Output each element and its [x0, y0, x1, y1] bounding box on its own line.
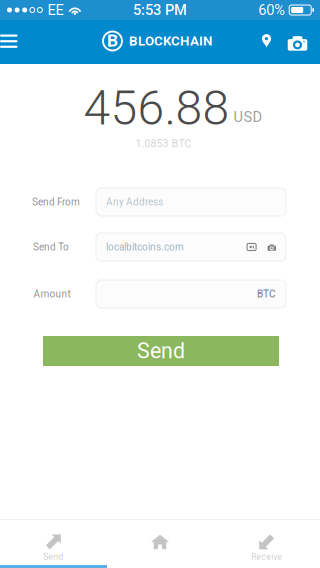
- staticText: Any Address: [106, 196, 163, 208]
- staticText: 456.88: [83, 80, 229, 136]
- button[interactable]: Scan QR code: [283, 23, 311, 61]
- staticText: Send: [137, 338, 185, 363]
- button[interactable]: Send: [0, 518, 107, 567]
- staticText: Send From: [32, 196, 80, 208]
- staticText: BTC: [257, 288, 276, 300]
- staticText: localbitcoins.com: [106, 241, 184, 253]
- staticText: 5:53 PM: [133, 1, 187, 19]
- staticText: Amount: [33, 288, 70, 300]
- staticText: BLOCKCHAIN: [129, 33, 212, 49]
- staticText: USD: [233, 108, 262, 126]
- staticText: B: [107, 30, 118, 51]
- button[interactable]: Nearby places: [253, 22, 279, 60]
- staticText: Send: [43, 552, 63, 562]
- staticText: Receive: [251, 552, 282, 562]
- staticText: 1.0853 BTC: [135, 137, 191, 150]
- button[interactable]: Receive: [213, 518, 320, 567]
- button[interactable]: Menu: [0, 21, 26, 61]
- button[interactable]: Choose contact: [247, 240, 256, 254]
- button[interactable]: Send: [43, 336, 279, 366]
- staticText: Send To: [33, 241, 69, 253]
- button[interactable]: Scan address: [268, 240, 276, 254]
- staticText: 60%: [258, 1, 285, 19]
- staticText: EE: [47, 1, 63, 19]
- button[interactable]: Home: [107, 518, 213, 567]
